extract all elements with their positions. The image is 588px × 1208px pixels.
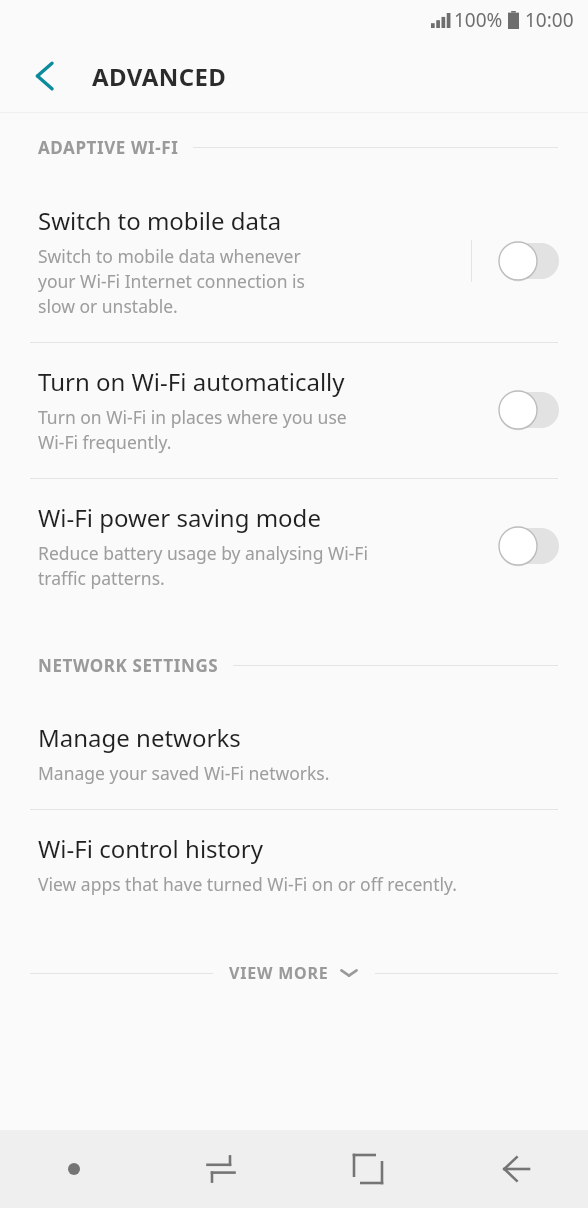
staticText: Switch to mobile data whenever your Wi-F… xyxy=(38,244,305,318)
button[interactable]: Switch to mobile data xyxy=(0,182,588,342)
button[interactable]: Recents xyxy=(147,1130,294,1208)
staticText: Manage your saved Wi-Fi networks. xyxy=(38,761,330,785)
staticText: Switch to mobile data xyxy=(38,204,282,237)
button[interactable]: Manage networks xyxy=(0,699,588,809)
button[interactable]: Toggle xyxy=(498,390,560,430)
button[interactable]: VIEW MORE xyxy=(0,954,588,992)
button[interactable]: Wi-Fi control history xyxy=(0,810,588,920)
staticText: Wi-Fi control history xyxy=(38,832,263,865)
button[interactable]: Wi-Fi power saving mode xyxy=(0,479,588,614)
staticText: View apps that have turned Wi-Fi on or o… xyxy=(38,872,457,896)
button[interactable]: Back xyxy=(441,1130,588,1208)
staticText: ADAPTIVE WI-FI xyxy=(38,136,179,159)
staticText: Manage networks xyxy=(38,721,241,754)
staticText: Turn on Wi-Fi automatically xyxy=(38,365,345,398)
button[interactable]: Home xyxy=(294,1130,441,1208)
staticText: 10:00 xyxy=(525,7,574,33)
button[interactable]: Menu xyxy=(0,1130,147,1208)
staticText: ADVANCED xyxy=(92,60,227,93)
button[interactable]: Turn on Wi-Fi automatically xyxy=(0,343,588,478)
button[interactable]: Back xyxy=(18,49,72,103)
staticText: 100% xyxy=(454,7,503,33)
staticText: Turn on Wi-Fi in places where you use Wi… xyxy=(38,405,347,454)
staticText: NETWORK SETTINGS xyxy=(38,654,219,677)
staticText: Wi-Fi power saving mode xyxy=(38,501,321,534)
staticText: Reduce battery usage by analysing Wi-Fi … xyxy=(38,541,368,590)
staticText: VIEW MORE xyxy=(229,962,329,984)
button[interactable]: Toggle xyxy=(498,526,560,566)
button[interactable]: Toggle xyxy=(498,241,560,281)
